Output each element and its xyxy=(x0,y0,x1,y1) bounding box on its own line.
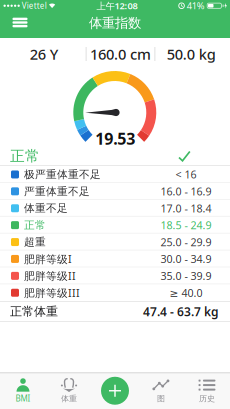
button[interactable]: 历史 xyxy=(184,372,230,409)
staticText: 正常 xyxy=(10,147,40,165)
staticText: 肥胖等级III xyxy=(24,286,80,300)
staticText: 35.0 - 39.9 xyxy=(160,269,211,283)
staticText: < 16 xyxy=(175,167,196,182)
button[interactable]: BMI xyxy=(0,372,46,409)
staticText: 17.0 - 18.4 xyxy=(160,201,211,215)
staticText: 体重指数 xyxy=(89,15,141,31)
staticText: 160.0 cm xyxy=(90,44,151,64)
staticText: 41% xyxy=(187,0,205,12)
staticText: 19.53 xyxy=(95,128,135,149)
staticText: 16.0 - 16.9 xyxy=(160,184,211,198)
staticText: 肥胖等级I xyxy=(24,252,72,266)
staticText: 上午12:08 xyxy=(96,0,137,12)
staticText: 肥胖等级II xyxy=(24,269,76,283)
staticText: 50.0 kg xyxy=(167,44,216,64)
staticText: 26 Y xyxy=(30,44,59,64)
button[interactable]: 添加 xyxy=(92,372,138,409)
button[interactable]: Menu xyxy=(6,10,34,34)
staticText: 体重 xyxy=(61,394,77,403)
staticText: 超重 xyxy=(24,235,46,249)
staticText: ≥ 40.0 xyxy=(169,286,202,300)
staticText: 历史 xyxy=(199,394,215,403)
staticText: 18.5 - 24.9 xyxy=(160,218,211,232)
staticText: BMI xyxy=(15,393,30,404)
staticText: 25.0 - 29.9 xyxy=(160,235,211,249)
staticText: 体重不足 xyxy=(24,202,68,215)
staticText: 正常 xyxy=(24,219,46,232)
button[interactable]: 体重 xyxy=(46,372,92,409)
staticText: 30.0 - 34.9 xyxy=(160,252,211,266)
staticText: 极严重体重不足 xyxy=(24,168,101,181)
button[interactable]: 图 xyxy=(138,372,184,409)
staticText: 图 xyxy=(157,394,165,403)
staticText: 47.4 - 63.7 kg xyxy=(143,303,219,319)
staticText: 严重体重不足 xyxy=(24,185,90,198)
staticText: 正常体重 xyxy=(10,304,58,319)
staticText: Viettel xyxy=(22,0,47,11)
